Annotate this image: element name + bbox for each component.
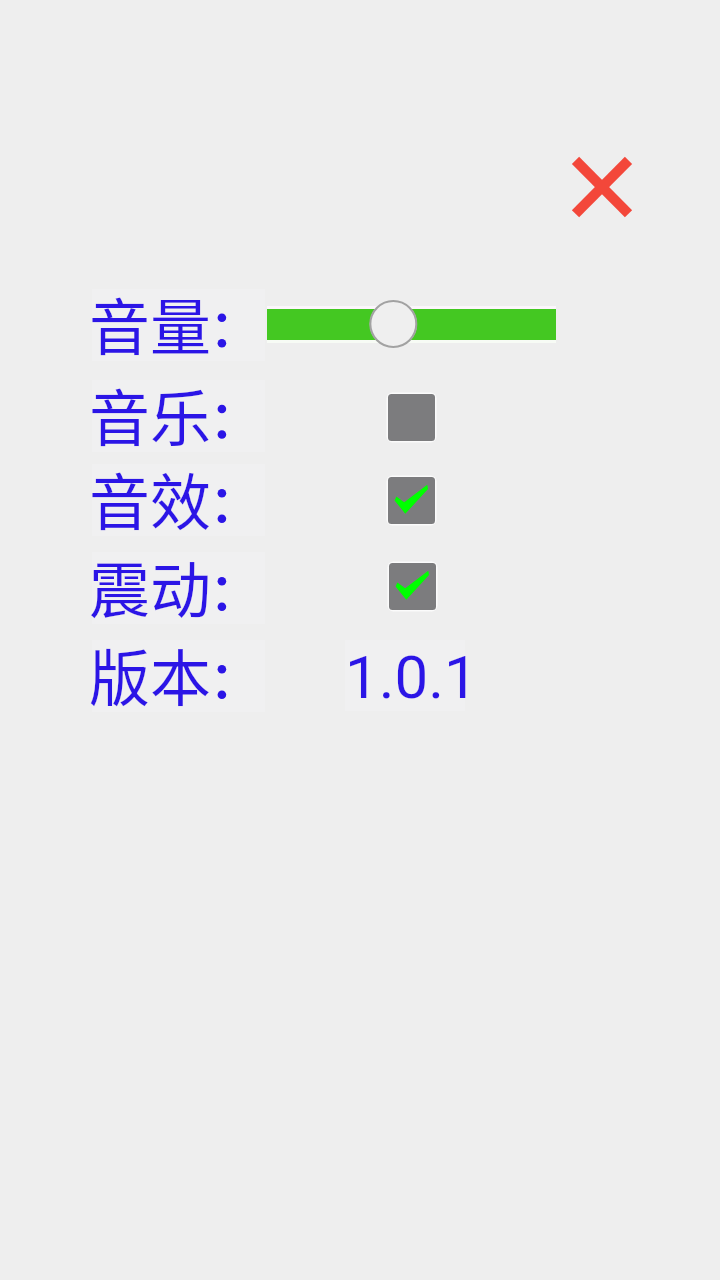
button[interactable] — [92, 640, 265, 712]
button[interactable]: Volume — [260, 296, 564, 352]
staticText: 音乐 — [89, 370, 212, 458]
button[interactable]: Enabled — [386, 560, 439, 613]
button[interactable]: Close — [552, 137, 652, 237]
staticText: 震动 — [89, 542, 212, 630]
staticText: 音量 — [89, 279, 212, 367]
button[interactable] — [92, 552, 265, 624]
button[interactable] — [92, 380, 265, 452]
button[interactable] — [92, 464, 265, 536]
staticText: 1.0.1 — [345, 642, 478, 712]
button[interactable]: Enabled — [385, 474, 438, 527]
button[interactable] — [92, 289, 265, 361]
button[interactable]: Disabled — [385, 391, 438, 444]
staticText: 版本 — [89, 630, 212, 718]
staticText: 音效 — [89, 454, 212, 542]
